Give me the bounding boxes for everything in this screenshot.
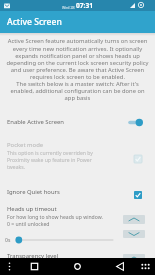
button[interactable]: Timeout slider (16, 235, 113, 245)
button[interactable]: Increase (123, 215, 145, 224)
staticText: Transparency level (7, 252, 59, 260)
button[interactable]: Home (69, 258, 86, 275)
button[interactable]: Enable Active Screen (0, 112, 155, 132)
button[interactable]: Transparency level (0, 250, 155, 264)
button[interactable]: Ignore Quiet hours (0, 183, 155, 201)
staticText: This option is currently overriden by Pr… (7, 150, 93, 171)
staticText: Wed 28 (62, 5, 75, 10)
button[interactable]: Checked (132, 187, 143, 198)
staticText: For how long to show heads up window. 0 … (7, 214, 103, 228)
button[interactable]: Pocket mode (0, 139, 155, 173)
button[interactable]: Back (112, 258, 129, 275)
button[interactable]: All apps (137, 258, 154, 275)
button[interactable]: Recent apps (26, 258, 43, 275)
button[interactable]: Disabled checkbox (132, 151, 143, 162)
staticText: Enable Active Screen (7, 118, 64, 126)
button[interactable]: Enable Active Screen toggle (128, 118, 143, 127)
staticText: Pocket mode (7, 141, 44, 149)
staticText: Active Screen (7, 16, 62, 28)
button[interactable]: Heads up timeout (0, 204, 155, 238)
staticText: Ignore Quiet hours (7, 188, 60, 196)
staticText: 07:31 (76, 1, 93, 10)
button[interactable]: Menu (1, 258, 18, 275)
staticText: Active Screen feature automatically turn… (2, 37, 153, 101)
button[interactable]: Increase (123, 254, 145, 263)
staticText: Heads up timeout (7, 205, 57, 213)
staticText: 0s (5, 237, 11, 244)
button[interactable]: Active Screen (0, 11, 155, 33)
button[interactable]: Decrease (123, 230, 145, 238)
